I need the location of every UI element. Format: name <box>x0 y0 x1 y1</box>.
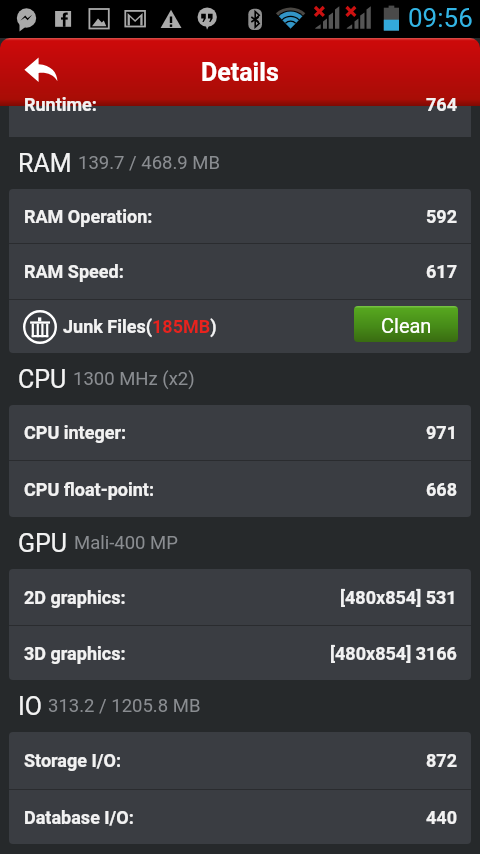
staticText: 971 <box>426 422 457 443</box>
button[interactable]: 3D graphics: <box>9 626 471 680</box>
button[interactable]: CPU integer: <box>9 405 471 460</box>
staticText: CPU integer: <box>24 422 127 443</box>
staticText: 09:56 <box>408 3 473 33</box>
staticText: Runtime: <box>24 94 97 115</box>
staticText: 313.2 / 1205.8 MB <box>48 695 201 717</box>
staticText: Mali-400 MP <box>74 532 178 554</box>
staticText: RAM Operation: <box>24 206 153 227</box>
button[interactable]: RAM Operation: <box>9 189 471 243</box>
staticText: Storage I/O: <box>24 750 122 771</box>
button[interactable]: CPU float-point: <box>9 461 471 517</box>
staticText: 2D graphics: <box>24 587 126 608</box>
button[interactable]: RAM Speed: <box>9 244 471 299</box>
button[interactable]: Database I/O: <box>9 790 471 844</box>
staticText: GPU <box>18 529 68 558</box>
staticText: 440 <box>426 807 457 828</box>
staticText: RAM Speed: <box>24 261 124 282</box>
button[interactable]: 2D graphics: <box>9 569 471 625</box>
staticText: 1300 MHz (x2) <box>73 368 195 390</box>
staticText: Clean <box>381 314 432 337</box>
staticText: 617 <box>426 261 457 282</box>
button[interactable]: Storage I/O: <box>9 732 471 789</box>
staticText: CPU float-point: <box>24 479 154 500</box>
staticText: Database I/O: <box>24 807 134 828</box>
staticText: [480x854] 531 <box>340 587 457 608</box>
staticText: CPU <box>18 365 67 394</box>
staticText: IO <box>18 692 42 721</box>
staticText: RAM <box>18 149 72 178</box>
staticText: 764 <box>426 94 457 115</box>
staticText: 3D graphics: <box>24 643 126 664</box>
staticText: 139.7 / 468.9 MB <box>78 152 221 174</box>
button[interactable]: Clean <box>354 306 458 342</box>
staticText: 592 <box>426 206 457 227</box>
button[interactable]: Back <box>20 52 60 92</box>
staticText: Junk Files(185MB) <box>63 316 217 337</box>
staticText: 668 <box>426 479 457 500</box>
staticText: Details <box>201 58 279 87</box>
staticText: [480x854] 3166 <box>330 643 457 664</box>
staticText: 872 <box>426 750 457 771</box>
